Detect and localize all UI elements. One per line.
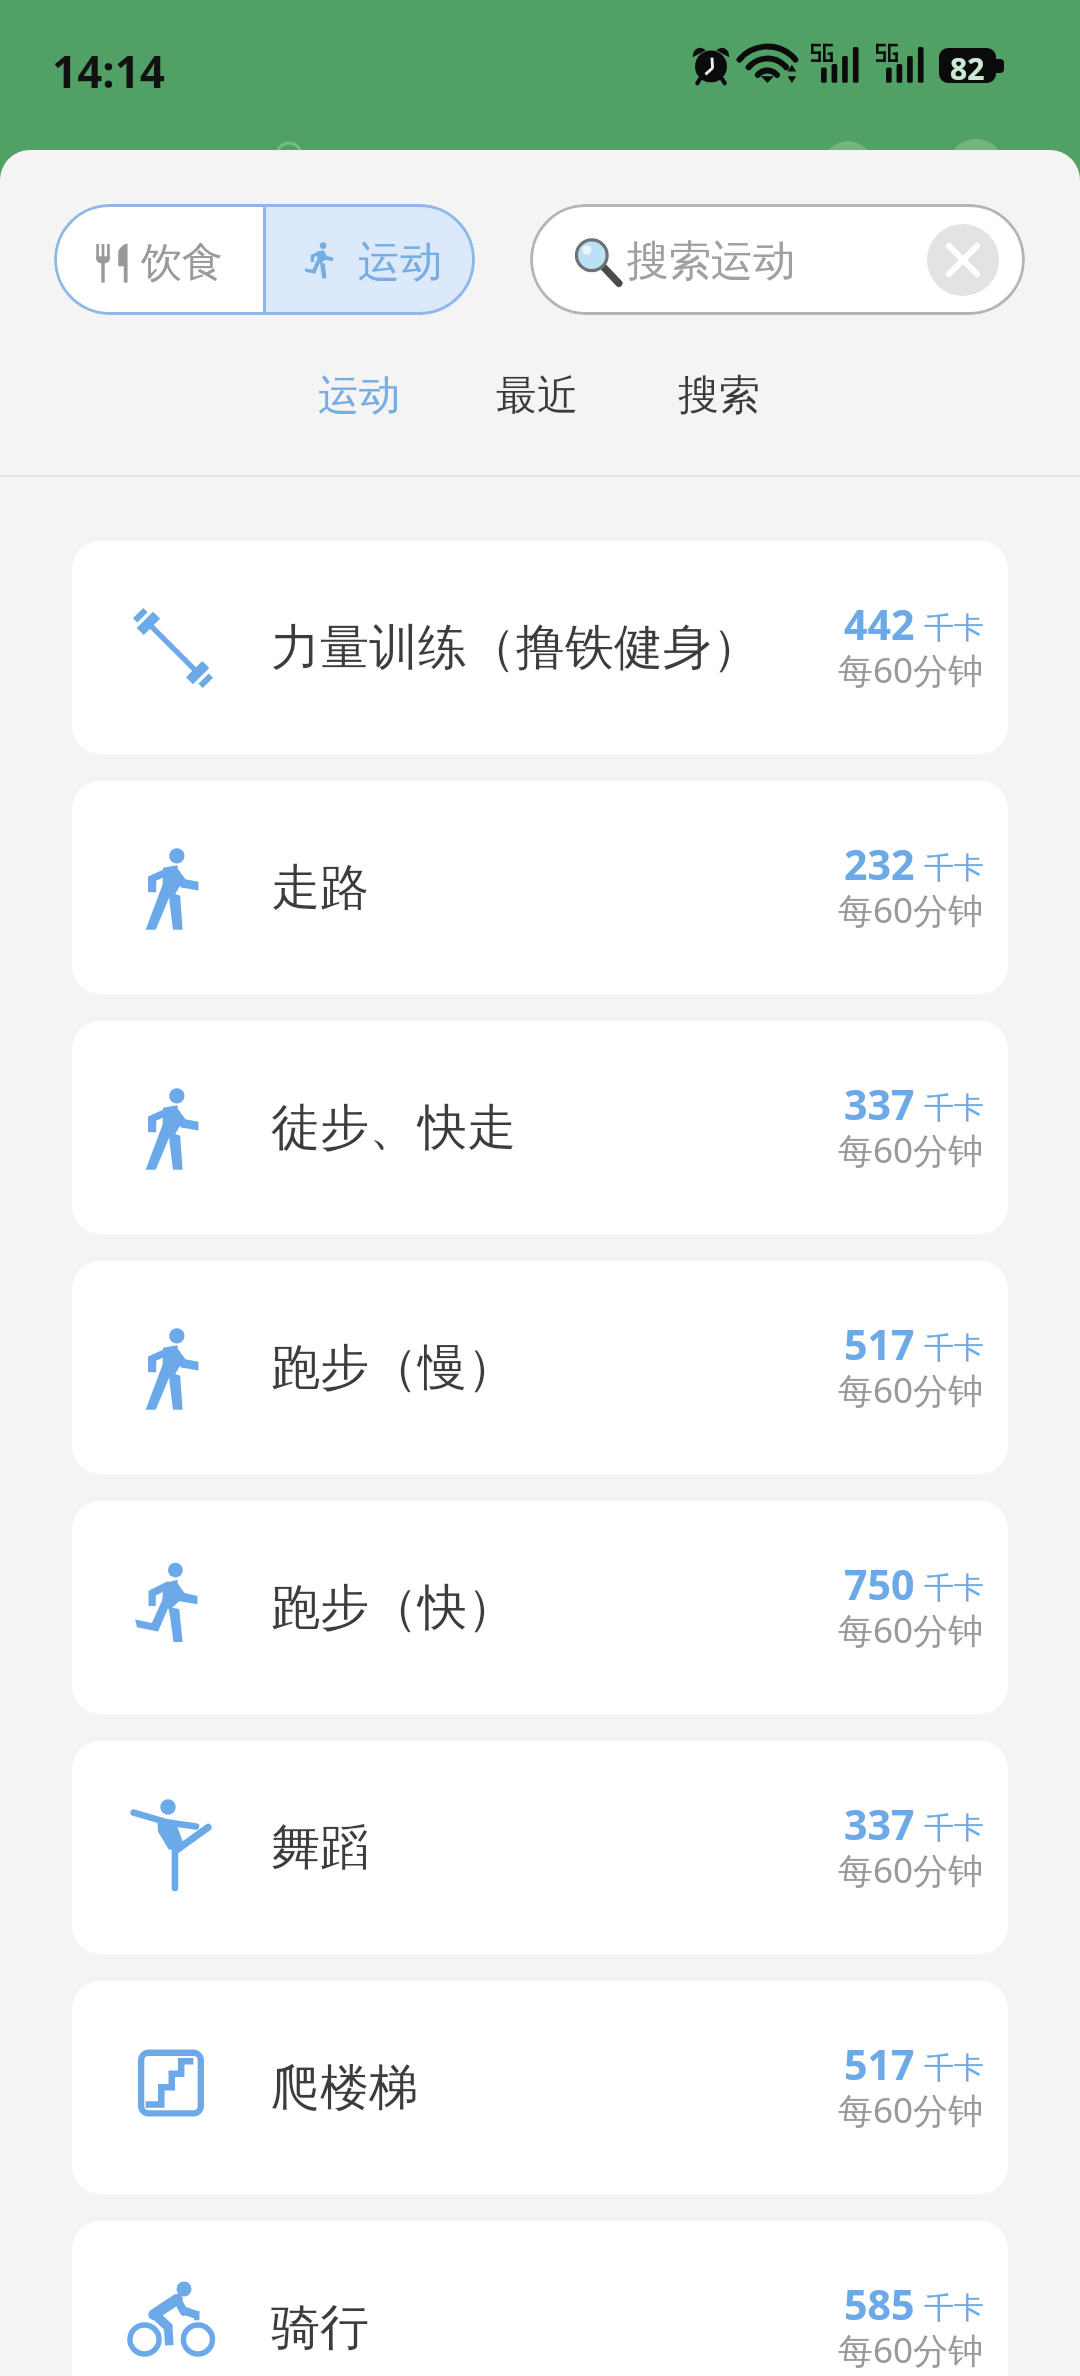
button[interactable]: 走路 [72, 781, 1008, 994]
staticText: 每60分钟 [838, 646, 984, 694]
staticText: 337 [844, 1796, 915, 1852]
staticText: 千卡 [924, 1569, 984, 1607]
button[interactable]: 搜索运动 [530, 204, 1025, 315]
staticText: 每60分钟 [838, 1126, 984, 1174]
staticText: 14:14 [52, 41, 166, 101]
staticText: 每60分钟 [838, 1366, 984, 1414]
staticText: 搜索 [678, 370, 760, 422]
staticText: 585 [844, 2276, 915, 2332]
button[interactable]: Clear search [927, 224, 999, 296]
staticText: 每60分钟 [838, 1846, 984, 1894]
staticText: 千卡 [924, 1089, 984, 1127]
staticText: 82 [950, 48, 985, 83]
staticText: 骑行 [271, 2297, 369, 2359]
staticText: 千卡 [924, 1329, 984, 1367]
staticText: 517 [844, 2036, 915, 2092]
button[interactable]: 力量训练（撸铁健身） [72, 541, 1008, 754]
staticText: 饮食 [141, 237, 223, 289]
staticText: 徒步、快走 [271, 1097, 516, 1159]
button[interactable]: 运动 [266, 204, 475, 315]
staticText: 力量训练（撸铁健身） [271, 617, 761, 679]
staticText: 千卡 [924, 609, 984, 647]
staticText: 运动 [358, 236, 442, 289]
staticText: 337 [844, 1076, 915, 1132]
button[interactable]: 骑行 [72, 2221, 1008, 2376]
staticText: 跑步（慢） [271, 1337, 516, 1399]
button[interactable]: 最近 [472, 360, 602, 432]
button[interactable]: 跑步（快） [72, 1501, 1008, 1714]
staticText: 每60分钟 [838, 2326, 984, 2374]
staticText: 运动 [318, 370, 400, 422]
staticText: 最近 [496, 370, 578, 422]
staticText: 232 [844, 836, 915, 892]
staticText: 750 [844, 1556, 915, 1612]
button[interactable]: 徒步、快走 [72, 1021, 1008, 1234]
staticText: 千卡 [924, 1809, 984, 1847]
button[interactable]: 饮食 [54, 204, 263, 315]
staticText: 517 [844, 1316, 915, 1372]
button[interactable]: 爬楼梯 [72, 1981, 1008, 2194]
staticText: 千卡 [924, 849, 984, 887]
staticText: 每60分钟 [838, 1606, 984, 1654]
staticText: 爬楼梯 [271, 2057, 418, 2119]
staticText: 每60分钟 [838, 886, 984, 934]
staticText: 跑步（快） [271, 1577, 516, 1639]
staticText: 舞蹈 [271, 1817, 369, 1879]
staticText: 每60分钟 [838, 2086, 984, 2134]
staticText: 千卡 [924, 2049, 984, 2087]
button[interactable]: 搜索 [654, 360, 784, 432]
button[interactable]: 跑步（慢） [72, 1261, 1008, 1474]
staticText: 千卡 [924, 2289, 984, 2327]
button[interactable]: 舞蹈 [72, 1741, 1008, 1954]
staticText: 442 [844, 596, 915, 652]
button[interactable]: 运动 [294, 360, 424, 432]
staticText: 搜索运动 [627, 235, 795, 288]
staticText: 走路 [271, 857, 369, 919]
